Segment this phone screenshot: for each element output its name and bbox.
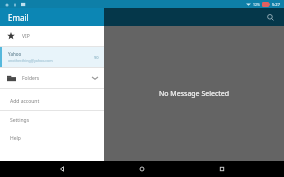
button[interactable]: Help: [0, 129, 104, 147]
button[interactable]: Search: [264, 11, 276, 23]
staticText: No Message Selected: [159, 89, 230, 99]
button[interactable]: Add account: [0, 92, 104, 110]
button[interactable]: Back: [22, 161, 102, 177]
button[interactable]: Email: [0, 8, 104, 26]
staticText: another.thing@yahoo.com: [8, 58, 53, 63]
staticText: Add account: [10, 98, 40, 105]
button[interactable]: Folders: [0, 68, 104, 88]
button[interactable]: Yahoo: [0, 47, 104, 67]
button[interactable]: Settings: [0, 111, 104, 129]
staticText: 90: [94, 55, 99, 60]
staticText: 12%: [253, 2, 260, 7]
staticText: Email: [8, 12, 29, 23]
staticText: 5:27: [272, 2, 280, 7]
staticText: Yahoo: [8, 51, 22, 57]
staticText: Settings: [10, 117, 30, 124]
button[interactable]: VIP: [0, 26, 104, 46]
button[interactable]: Home: [102, 161, 182, 177]
button[interactable]: Recent apps: [182, 161, 262, 177]
staticText: Folders: [22, 75, 92, 82]
staticText: Help: [10, 135, 21, 142]
staticText: VIP: [22, 33, 30, 40]
